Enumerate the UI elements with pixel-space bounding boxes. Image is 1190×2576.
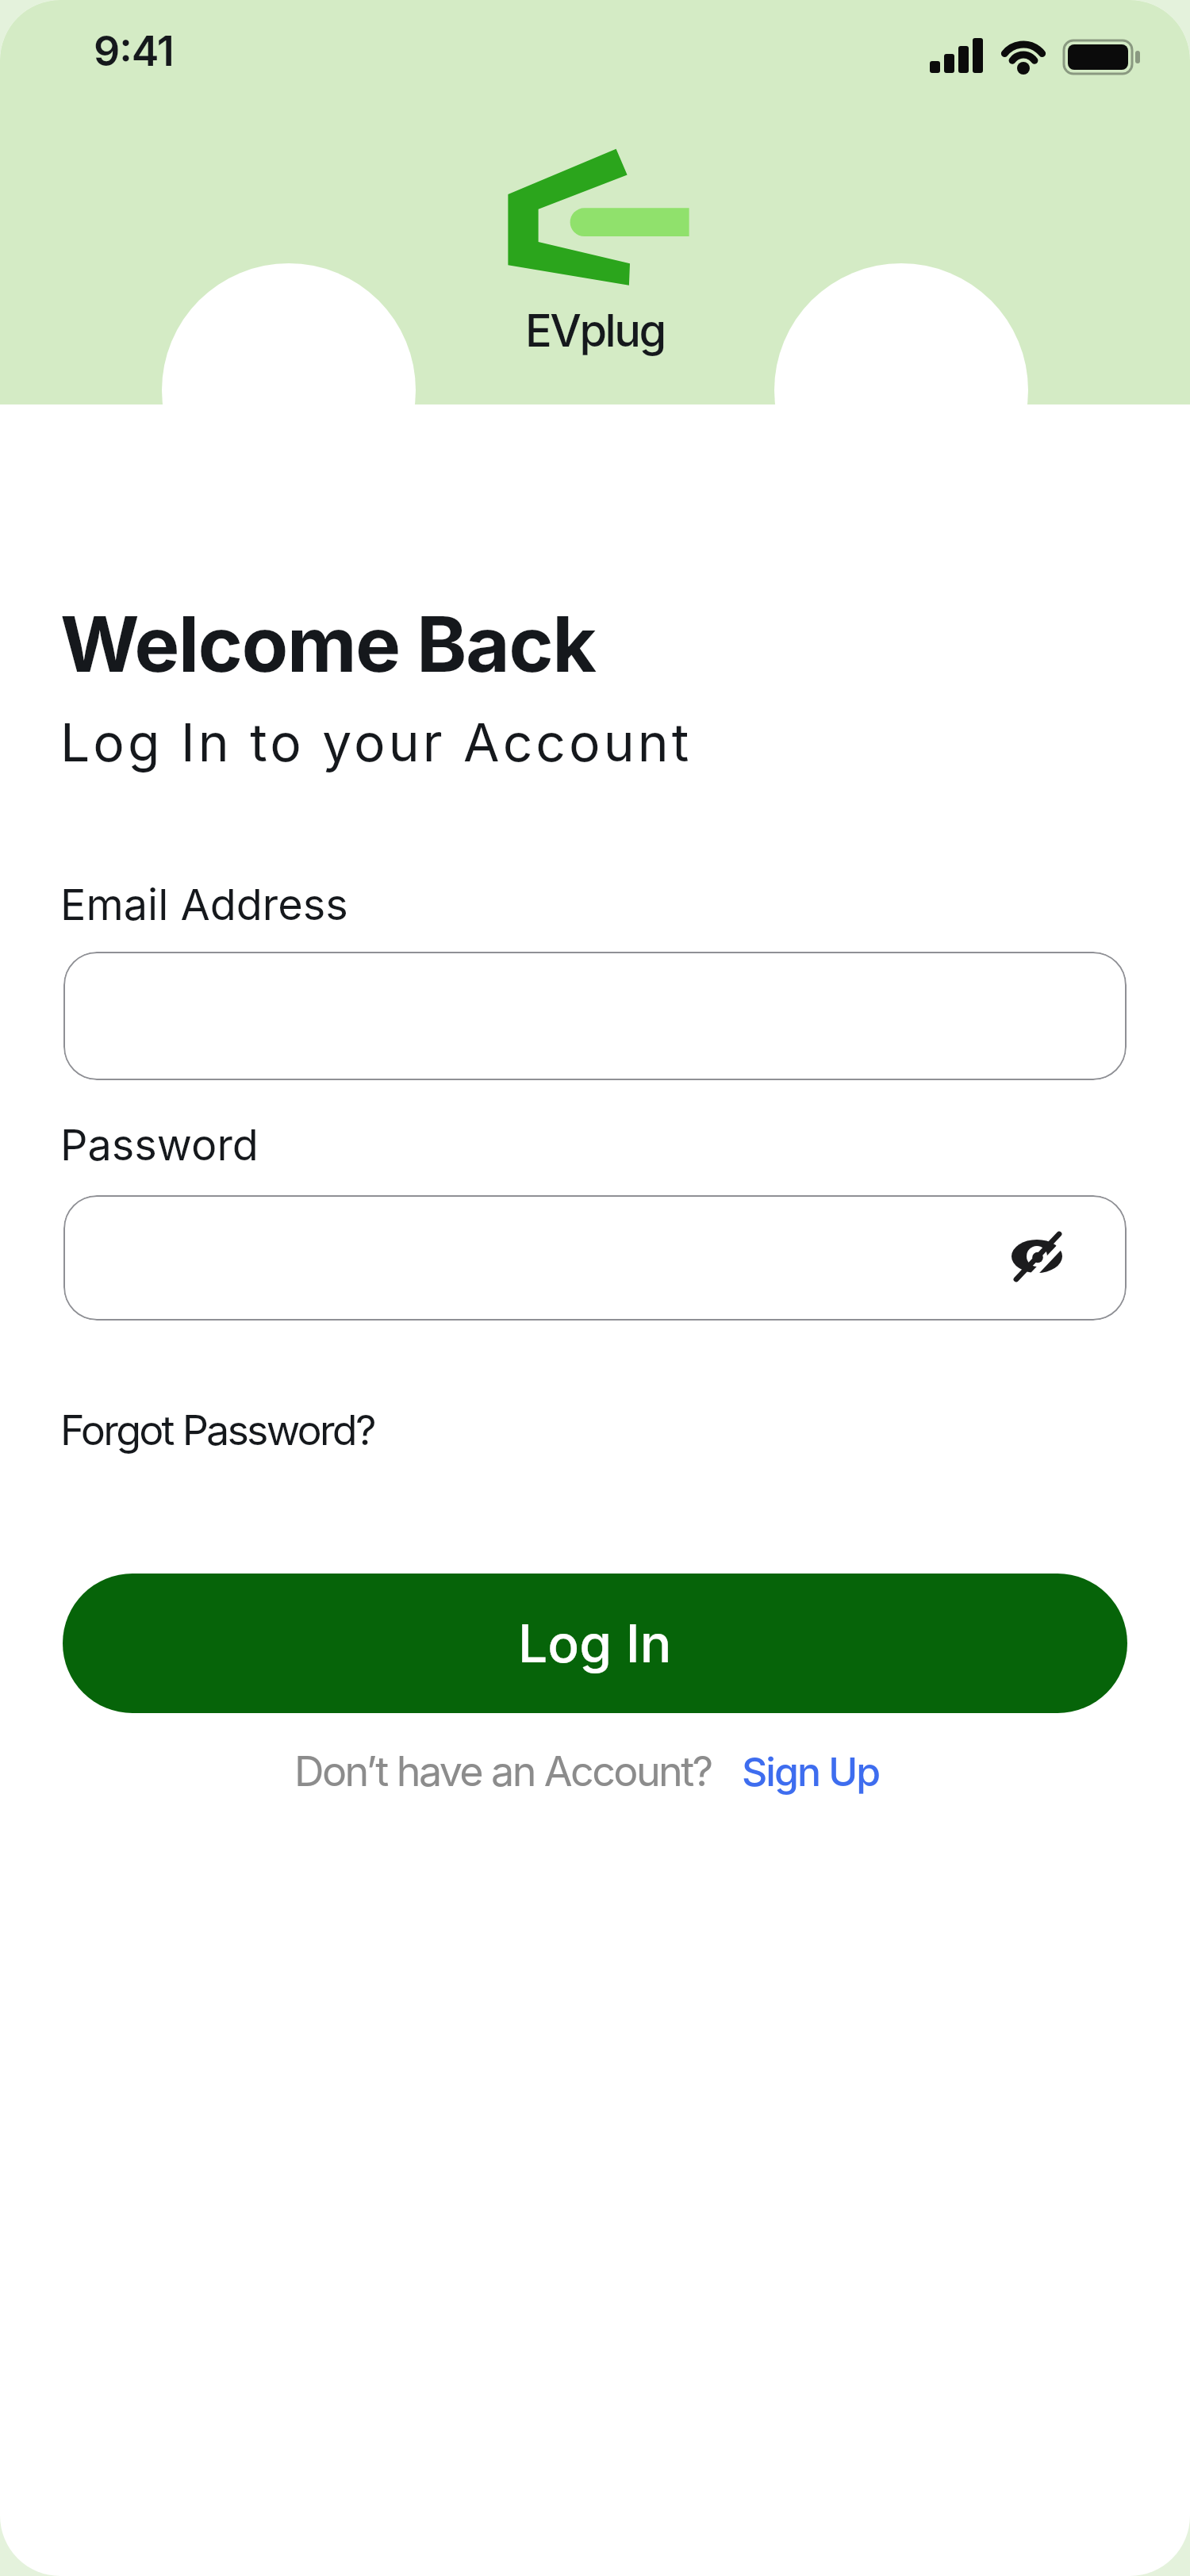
staticText: Don’t have an Account? bbox=[294, 1746, 712, 1796]
button[interactable]: Sign Up bbox=[742, 1748, 880, 1796]
button[interactable] bbox=[63, 952, 1127, 1080]
staticText: 9:41 bbox=[94, 26, 174, 76]
staticText: Log In bbox=[518, 1612, 672, 1675]
button[interactable] bbox=[63, 1195, 1127, 1321]
staticText: Password bbox=[60, 1119, 259, 1171]
staticText: Forgot Password? bbox=[60, 1405, 374, 1455]
button[interactable]: Forgot Password? bbox=[60, 1405, 374, 1455]
button[interactable] bbox=[992, 1213, 1082, 1301]
staticText: Email Address bbox=[60, 879, 348, 930]
staticText: Sign Up bbox=[742, 1748, 880, 1796]
staticText: EVplug bbox=[525, 304, 665, 358]
button[interactable]: Log In bbox=[63, 1574, 1127, 1713]
staticText: Log In to your Account bbox=[60, 711, 693, 774]
staticText: Welcome Back bbox=[60, 598, 596, 690]
